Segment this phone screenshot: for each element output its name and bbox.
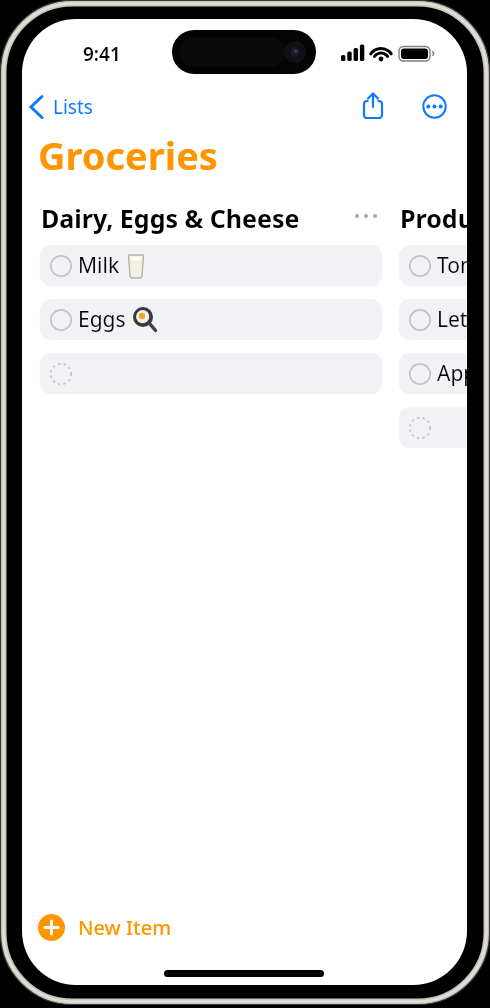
- staticText: Groceries: [38, 129, 218, 181]
- staticText: Apples: [437, 359, 467, 388]
- button[interactable]: Eggs: [40, 299, 382, 340]
- staticText: Lettuce: [437, 305, 467, 334]
- staticText: Dairy, Eggs & Cheese: [41, 201, 300, 235]
- staticText: Lists: [53, 94, 93, 120]
- button[interactable]: Apples: [399, 353, 467, 394]
- button[interactable]: Milk: [40, 245, 382, 286]
- button[interactable]: [418, 90, 450, 122]
- staticText: Milk: [78, 251, 120, 280]
- staticText: New Item: [78, 914, 172, 941]
- button[interactable]: [348, 203, 384, 229]
- button[interactable]: New Item: [38, 909, 208, 945]
- button[interactable]: Lists: [27, 91, 117, 123]
- staticText: Produce: [400, 201, 467, 235]
- staticText: 9:41: [83, 41, 121, 67]
- button[interactable]: Tomatoes: [399, 245, 467, 286]
- button[interactable]: Lettuce: [399, 299, 467, 340]
- staticText: Tomatoes: [437, 251, 467, 280]
- staticText: Eggs: [78, 305, 126, 334]
- button[interactable]: [399, 407, 467, 448]
- button[interactable]: [354, 87, 392, 123]
